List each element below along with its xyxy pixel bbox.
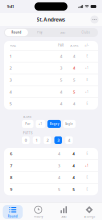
staticText: Round bbox=[8, 215, 18, 218]
button[interactable]: +1 bbox=[36, 120, 45, 128]
button[interactable]: 2 bbox=[44, 136, 51, 144]
staticText: 8 bbox=[10, 175, 12, 180]
button[interactable]: 8 bbox=[4, 172, 98, 183]
staticText: 5 bbox=[73, 89, 75, 94]
button[interactable]: More options bbox=[89, 14, 100, 25]
staticText: HOLE bbox=[9, 44, 15, 47]
staticText: 3 bbox=[9, 77, 11, 83]
staticText: 1 bbox=[9, 53, 11, 59]
staticText: 0 bbox=[25, 137, 27, 143]
staticText: +/− bbox=[84, 44, 89, 47]
staticText: Round bbox=[11, 31, 21, 34]
button[interactable]: 2 bbox=[4, 62, 98, 74]
staticText: E bbox=[86, 188, 87, 191]
button[interactable]: 1 bbox=[33, 136, 40, 144]
button[interactable]: Par bbox=[22, 120, 33, 128]
staticText: 6 bbox=[10, 151, 12, 156]
staticText: 2 bbox=[46, 137, 48, 143]
staticText: 9:41 bbox=[7, 4, 14, 9]
staticText: History bbox=[34, 215, 43, 218]
button[interactable]: 9 bbox=[4, 184, 98, 195]
staticText: 4 bbox=[58, 151, 60, 156]
staticText: 4 bbox=[72, 163, 74, 168]
staticText: PAR bbox=[58, 44, 64, 47]
staticText: 4 bbox=[68, 137, 70, 143]
staticText: PUTTS bbox=[23, 131, 32, 135]
staticText: 5 bbox=[60, 77, 62, 83]
staticText: 5 bbox=[9, 101, 11, 106]
staticText: 4 bbox=[58, 175, 60, 180]
staticText: 4 bbox=[60, 101, 62, 106]
staticText: 4 bbox=[73, 53, 75, 59]
staticText: St. Andrews bbox=[36, 16, 65, 23]
button[interactable]: 6 bbox=[4, 148, 98, 159]
staticText: 4 bbox=[73, 101, 75, 106]
staticText: Bogey bbox=[50, 122, 59, 126]
staticText: Settings bbox=[84, 215, 95, 218]
staticText: 1 bbox=[36, 137, 38, 143]
button[interactable]: Play bbox=[28, 29, 51, 36]
staticText: SCORE bbox=[70, 44, 78, 47]
staticText: SCORE bbox=[23, 115, 31, 118]
staticText: 4 bbox=[72, 151, 74, 156]
button[interactable]: Round bbox=[5, 29, 28, 36]
staticText: E bbox=[86, 152, 87, 155]
staticText: 3 bbox=[60, 65, 62, 71]
staticText: 5 bbox=[72, 187, 74, 192]
staticText: E bbox=[86, 102, 87, 105]
staticText: 5 bbox=[73, 77, 75, 83]
button[interactable]: Clubs bbox=[74, 29, 97, 36]
staticText: Par bbox=[25, 122, 30, 126]
staticText: E bbox=[86, 176, 87, 179]
button[interactable]: 7 bbox=[4, 160, 98, 171]
button[interactable]: 3 bbox=[4, 74, 98, 86]
staticText: 4 bbox=[9, 89, 11, 94]
button[interactable]: 4 bbox=[65, 136, 73, 144]
button[interactable]: 0 bbox=[22, 136, 30, 144]
button[interactable]: 4 bbox=[4, 86, 98, 98]
button[interactable]: History bbox=[25, 205, 51, 219]
staticText: Play bbox=[37, 31, 42, 34]
button[interactable]: 1 bbox=[4, 50, 98, 62]
staticText: Clubs bbox=[82, 31, 90, 34]
staticText: Eagle bbox=[65, 122, 73, 126]
staticText: Stats bbox=[60, 31, 65, 34]
staticText: 9 bbox=[10, 187, 12, 192]
staticText: +1 bbox=[38, 122, 42, 126]
button[interactable]: Stats bbox=[51, 205, 76, 219]
staticText: 7 bbox=[10, 163, 12, 168]
staticText: 2 bbox=[9, 65, 11, 71]
button[interactable]: Round bbox=[0, 205, 25, 219]
staticText: 4 bbox=[60, 89, 62, 94]
staticText: +1 bbox=[85, 90, 89, 94]
staticText: E bbox=[86, 54, 87, 58]
staticText: +1 bbox=[85, 66, 89, 70]
button[interactable]: Settings bbox=[76, 205, 102, 219]
button[interactable]: Bogey bbox=[47, 120, 61, 128]
button[interactable]: Eagle bbox=[63, 120, 76, 128]
staticText: 5 bbox=[58, 187, 60, 192]
staticText: 3 bbox=[57, 137, 59, 143]
staticText: E bbox=[86, 78, 87, 82]
staticText: +1 bbox=[85, 164, 89, 167]
button[interactable]: 3 bbox=[54, 136, 62, 144]
button[interactable]: 5 bbox=[4, 98, 98, 109]
button[interactable]: Stats bbox=[51, 29, 74, 36]
staticText: Stats bbox=[61, 215, 66, 218]
staticText: 4 bbox=[60, 53, 62, 59]
staticText: 4 bbox=[73, 65, 75, 71]
staticText: 4 bbox=[72, 175, 74, 180]
staticText: 3 bbox=[58, 163, 60, 168]
